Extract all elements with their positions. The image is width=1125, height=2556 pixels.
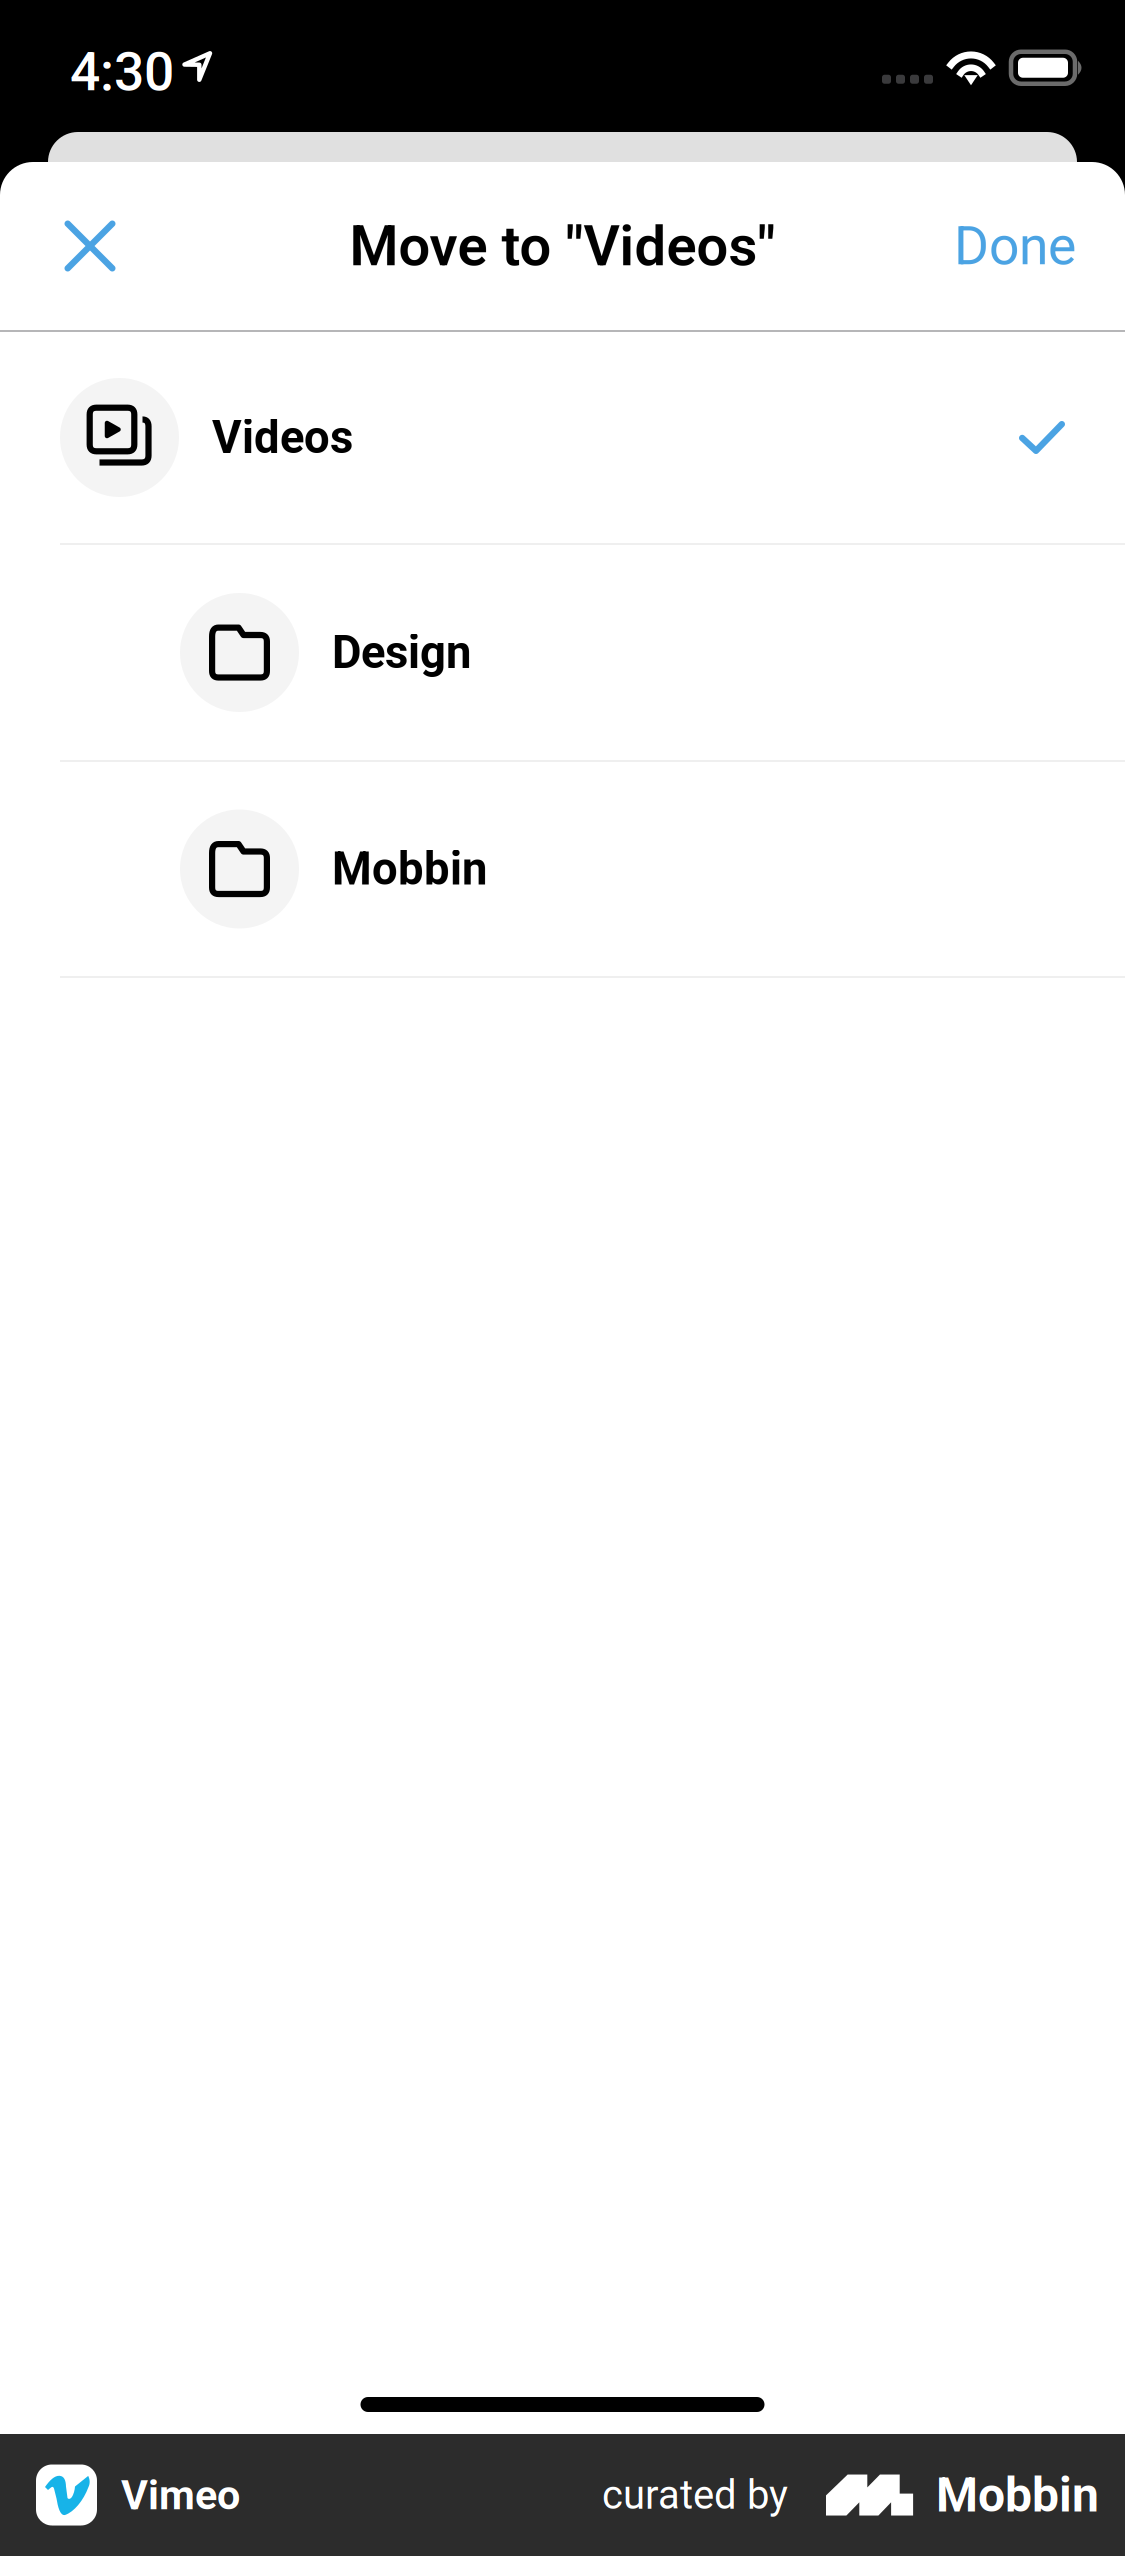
staticText: curated by xyxy=(602,2472,788,2518)
staticText: Vimeo xyxy=(121,2471,240,2519)
staticText: Move to "Videos" xyxy=(349,213,775,279)
button[interactable]: Close xyxy=(34,190,146,302)
button[interactable]: Done xyxy=(914,185,1076,307)
staticText: Design xyxy=(332,626,471,679)
button[interactable]: Design xyxy=(0,545,1125,762)
staticText: Videos xyxy=(212,411,353,464)
staticText: Mobbin xyxy=(332,842,487,895)
staticText: 4:30 xyxy=(70,41,174,103)
button[interactable]: Videos xyxy=(0,332,1125,545)
staticText: Done xyxy=(954,215,1076,277)
staticText: Mobbin xyxy=(936,2467,1099,2523)
button[interactable]: Mobbin xyxy=(0,762,1125,978)
